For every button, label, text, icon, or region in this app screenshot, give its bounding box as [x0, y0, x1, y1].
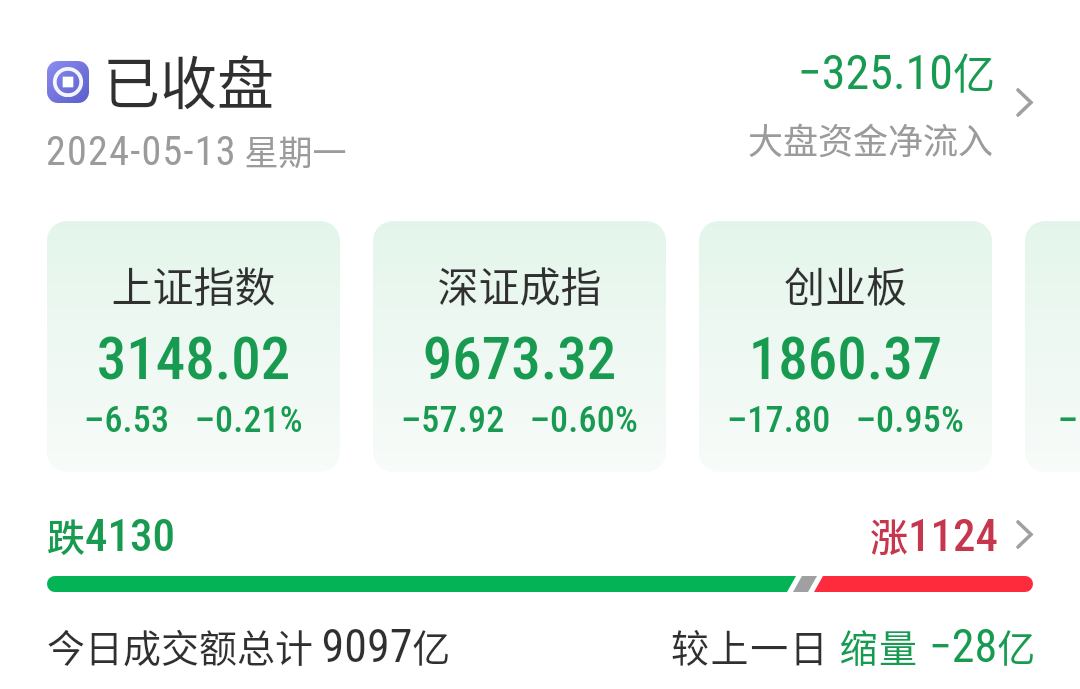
staticText: 较上一日 缩量 −28亿 — [671, 618, 1036, 673]
staticText: 大盘资金净流入 — [661, 113, 993, 164]
staticText: 上证指数 — [47, 254, 340, 313]
staticText: 9673.32 — [373, 324, 666, 393]
staticText: 已收盘 — [103, 38, 274, 121]
staticText: 深证成指 — [373, 254, 666, 313]
staticText: 涨1124 — [870, 507, 999, 562]
button[interactable]: 跌4130 — [0, 500, 1080, 560]
staticText: 今日成交额总计 9097亿 — [47, 618, 451, 673]
button[interactable]: 创业板 — [699, 221, 992, 472]
button[interactable]: 深证成指 — [373, 221, 666, 472]
staticText: –57.92 –0.60% — [373, 399, 666, 441]
staticText: 1860.37 — [699, 324, 992, 393]
button[interactable]: 科创50 — [1025, 221, 1080, 472]
other: Open advancers and decliners — [1016, 520, 1033, 549]
staticText: –6.53 –0.21% — [47, 399, 340, 441]
staticText: −325.10亿 — [663, 40, 995, 101]
staticText: 跌4130 — [47, 507, 176, 562]
other: Open capital flow details — [1016, 88, 1033, 117]
staticText: 创业板 — [699, 254, 992, 313]
button[interactable]: Market status — [40, 40, 400, 170]
staticText: –17.80 –0.95% — [699, 399, 992, 441]
button[interactable]: −325.10亿 — [660, 36, 1040, 166]
staticText: 3148.02 — [47, 324, 340, 393]
staticText: 2024-05-13 星期一 — [46, 126, 347, 175]
staticText: –9.13 –1.21% — [1025, 399, 1080, 441]
button[interactable]: 上证指数 — [47, 221, 340, 472]
other: Market status — [47, 61, 89, 103]
